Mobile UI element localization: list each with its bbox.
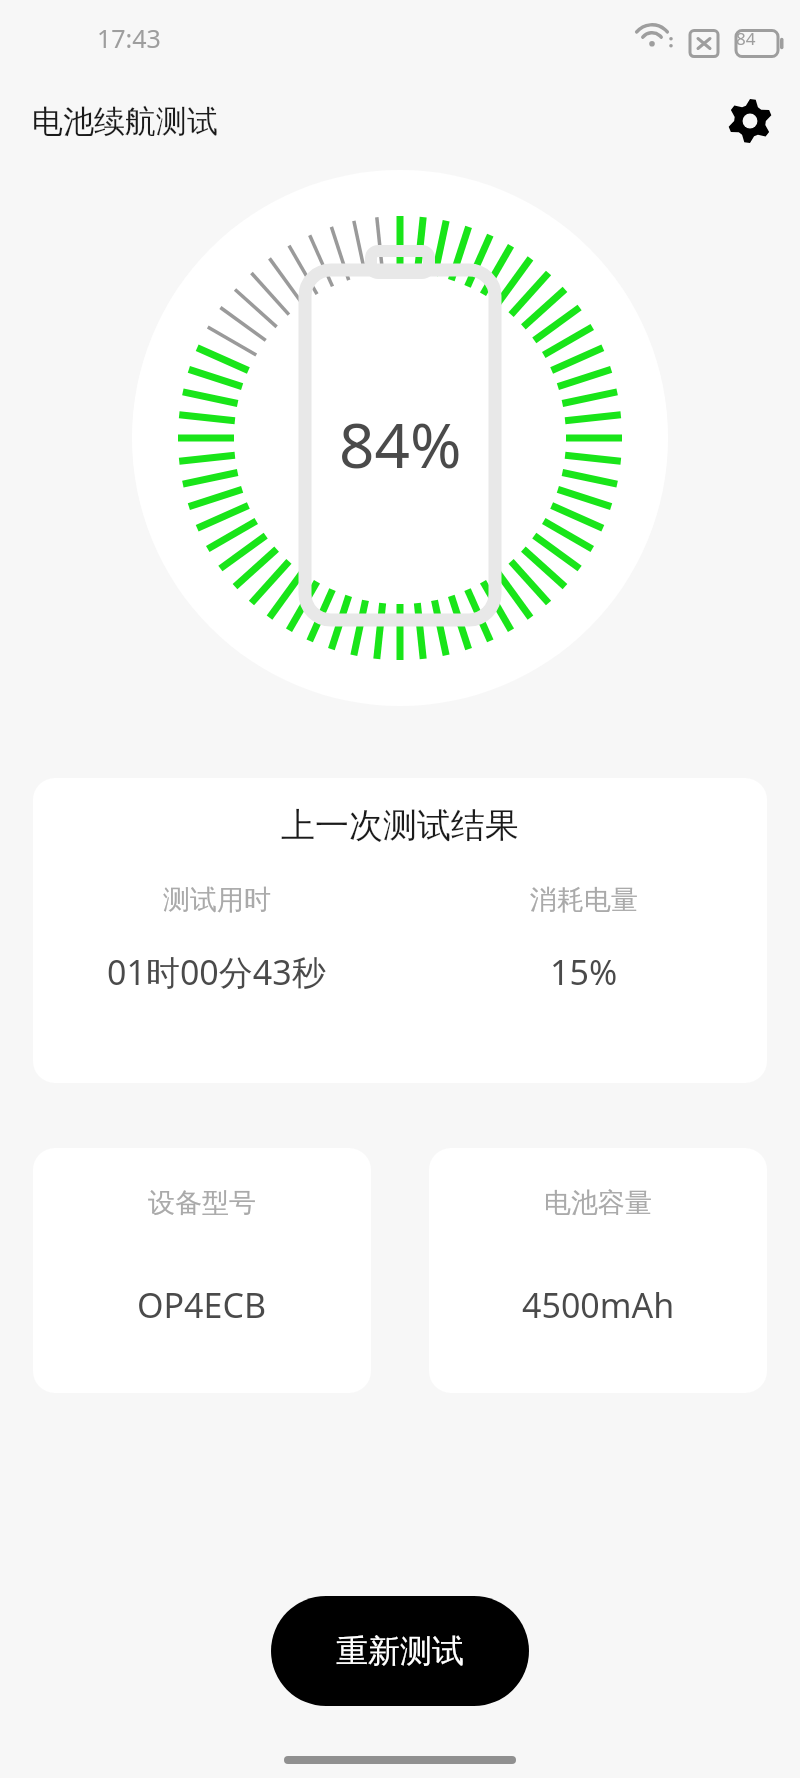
staticText: 重新测试 (336, 1631, 464, 1671)
staticText: 15% (550, 949, 618, 995)
staticText: 电池容量 (544, 1186, 652, 1220)
staticText: 上一次测试结果 (281, 804, 519, 847)
button[interactable]: 重新测试 (271, 1596, 529, 1706)
staticText: OP4ECB (137, 1282, 267, 1328)
staticText: 测试用时 (163, 883, 271, 917)
staticText: 4500mAh (522, 1282, 675, 1328)
button[interactable]: 电池容量 (429, 1148, 767, 1393)
staticText: 01时00分43秒 (107, 949, 326, 995)
staticText: 84% (339, 402, 462, 486)
button[interactable]: 上一次测试结果 (33, 778, 767, 1083)
staticText: 设备型号 (148, 1186, 256, 1220)
button[interactable]: Settings (718, 89, 782, 153)
staticText: 电池续航测试 (32, 102, 218, 141)
staticText: 消耗电量 (530, 883, 638, 917)
button[interactable]: 设备型号 (33, 1148, 371, 1393)
staticText: 84 (736, 27, 756, 50)
staticText: 17:43 (97, 21, 161, 55)
